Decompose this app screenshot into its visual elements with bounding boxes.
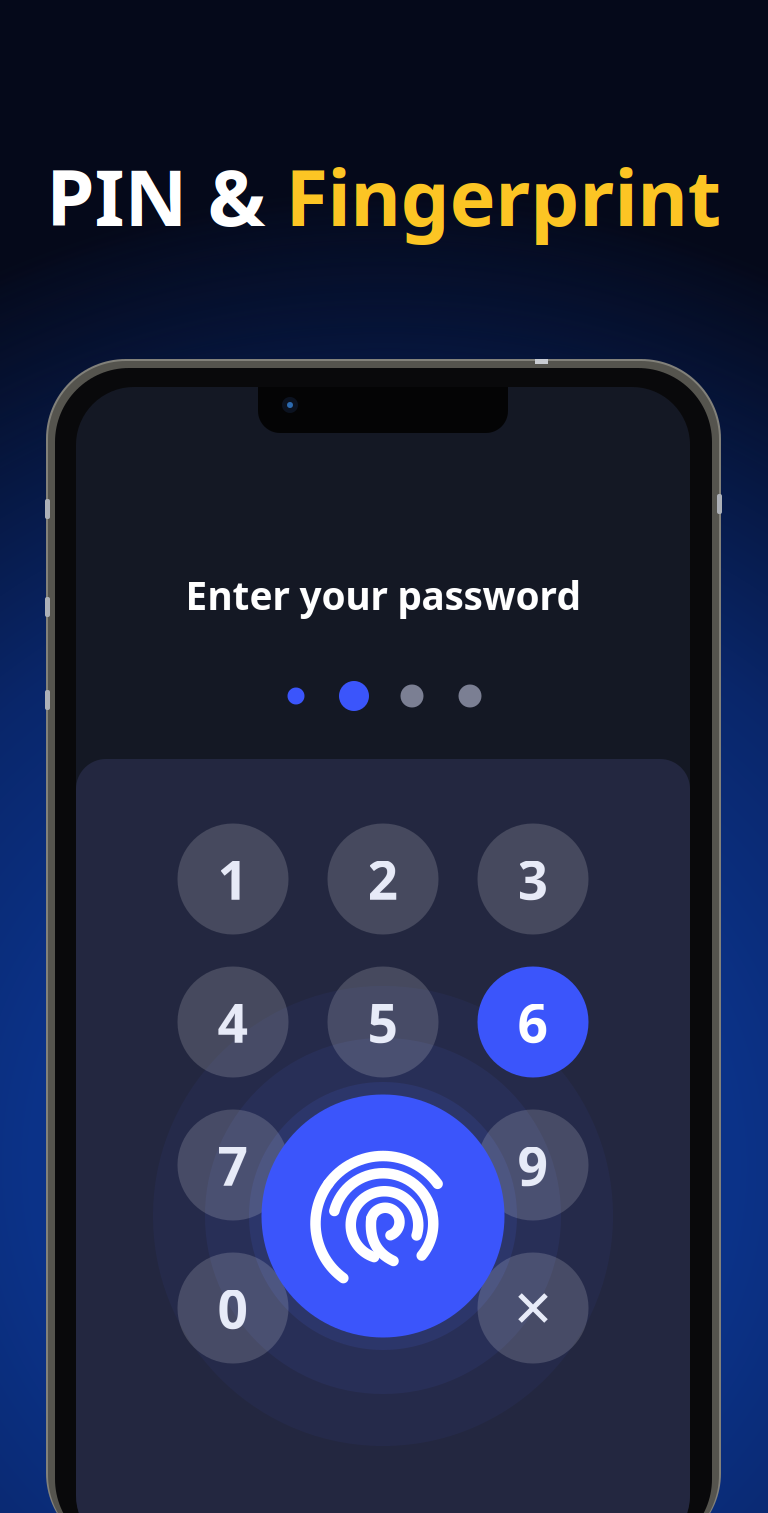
staticText: 6	[517, 987, 548, 1057]
staticText: 4	[217, 987, 248, 1057]
button[interactable]: 1	[177, 823, 288, 934]
button[interactable]: 0	[177, 1252, 288, 1363]
staticText: Fingerprint	[285, 145, 721, 247]
button[interactable]: 5	[327, 966, 438, 1077]
staticText: 5	[367, 987, 398, 1057]
staticText: 3	[517, 844, 548, 914]
staticText: 7	[217, 1130, 248, 1200]
button[interactable]: 6	[477, 966, 588, 1077]
button[interactable]: 2	[327, 823, 438, 934]
button[interactable]: Unlock with fingerprint	[261, 1094, 504, 1337]
staticText: 0	[217, 1273, 248, 1343]
button[interactable]: Delete	[477, 1252, 588, 1363]
staticText: 2	[367, 844, 398, 914]
staticText: Enter your password	[185, 569, 580, 621]
staticText: 1	[217, 844, 248, 914]
button[interactable]: 9	[477, 1109, 588, 1220]
button[interactable]: 3	[477, 823, 588, 934]
staticText: 9	[517, 1130, 548, 1200]
button[interactable]: 7	[177, 1109, 288, 1220]
button[interactable]: 4	[177, 966, 288, 1077]
staticText: PIN &	[46, 145, 285, 247]
